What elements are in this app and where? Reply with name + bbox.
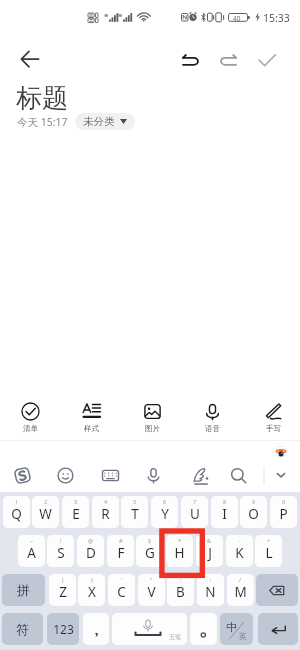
staticText: 语音	[205, 424, 220, 433]
button[interactable]: ;	[197, 574, 224, 606]
button[interactable]: 7	[181, 496, 208, 528]
button[interactable]: "	[138, 574, 165, 606]
staticText: Y	[161, 505, 169, 523]
staticText: /	[239, 576, 242, 584]
staticText: -	[239, 537, 241, 545]
staticText: $	[148, 537, 152, 545]
button[interactable]: 语音	[187, 389, 237, 433]
staticText: 拼	[17, 582, 30, 598]
staticText: 4	[104, 498, 108, 506]
button[interactable]: Redo	[212, 45, 244, 77]
staticText: 图片	[145, 424, 160, 433]
staticText: P	[279, 505, 288, 523]
button[interactable]: Input method	[4, 457, 40, 493]
staticText: R	[101, 505, 110, 523]
button[interactable]: $	[136, 535, 163, 567]
staticText: 手写	[266, 424, 281, 433]
button[interactable]: /	[227, 574, 254, 606]
button[interactable]: 0	[270, 496, 297, 528]
staticText: 15:33	[263, 11, 290, 25]
staticText: 6	[163, 498, 167, 506]
staticText: Z	[59, 583, 67, 601]
staticText: +	[267, 537, 271, 545]
button[interactable]: 拼	[2, 574, 45, 606]
staticText: Q	[11, 505, 22, 523]
button[interactable]: Keyboard layout	[92, 457, 128, 493]
button[interactable]: 123	[47, 613, 79, 645]
button[interactable]: 9	[240, 496, 267, 528]
staticText: 8	[223, 498, 227, 506]
button[interactable]	[258, 613, 298, 645]
button[interactable]: -	[226, 535, 253, 567]
button[interactable]: #	[107, 535, 134, 567]
button[interactable]: 4	[92, 496, 119, 528]
button[interactable]: :	[167, 574, 194, 606]
button[interactable]: 未分类	[75, 113, 135, 130]
staticText: ~	[30, 537, 34, 545]
staticText: V	[147, 583, 156, 601]
staticText: )	[91, 576, 93, 584]
button[interactable]: &	[196, 535, 223, 567]
button[interactable]: +	[255, 535, 282, 567]
staticText: 9	[252, 498, 256, 506]
staticText: 7	[193, 498, 197, 506]
button[interactable]: Back	[12, 46, 48, 82]
button[interactable]: 3	[62, 496, 89, 528]
button[interactable]: 1	[3, 496, 30, 528]
staticText: E	[72, 505, 80, 523]
staticText: @	[88, 537, 94, 545]
staticText: 今天 15:17	[17, 115, 68, 129]
button[interactable]	[190, 613, 217, 645]
button[interactable]: Search	[220, 457, 256, 493]
staticText: 未分类	[83, 115, 115, 128]
staticText: 40	[233, 14, 241, 23]
button[interactable]: Undo	[175, 45, 207, 77]
button[interactable]: 6	[151, 496, 178, 528]
staticText: 0	[282, 498, 286, 506]
staticText: J	[208, 544, 212, 562]
button[interactable]: 中	[220, 613, 253, 645]
button[interactable]: 图片	[127, 389, 177, 433]
button[interactable]: 符	[2, 613, 43, 645]
staticText: F	[117, 544, 125, 562]
button[interactable]: Handwriting	[184, 457, 220, 493]
button[interactable]: *	[166, 535, 193, 567]
button[interactable]	[256, 574, 298, 606]
staticText: T	[131, 505, 139, 523]
button[interactable]: Done	[251, 44, 283, 76]
button[interactable]: 清单	[5, 389, 55, 433]
button[interactable]: 5	[121, 496, 148, 528]
button[interactable]: 2	[32, 496, 59, 528]
button[interactable]: 手写	[248, 389, 298, 433]
staticText: S	[57, 544, 65, 562]
button[interactable]: 样式	[66, 389, 116, 433]
staticText: 2	[44, 498, 48, 506]
staticText: B	[176, 583, 185, 601]
button[interactable]: Hide keyboard	[263, 457, 299, 493]
button[interactable]: Voice input	[135, 457, 171, 493]
button[interactable]: 五笔	[112, 613, 187, 645]
staticText: '	[121, 576, 123, 584]
staticText: O	[248, 505, 259, 523]
button[interactable]: @	[77, 535, 104, 567]
staticText: C	[117, 583, 126, 601]
button[interactable]: Emoji	[47, 457, 83, 493]
button[interactable]: (	[49, 574, 76, 606]
staticText: D	[86, 544, 96, 562]
button[interactable]	[83, 613, 109, 645]
button[interactable]: ~	[18, 535, 45, 567]
button[interactable]: )	[78, 574, 105, 606]
staticText: G	[145, 544, 155, 562]
staticText: ;	[210, 576, 212, 584]
staticText: A	[27, 544, 36, 562]
staticText: &	[207, 537, 212, 545]
button[interactable]: '	[108, 574, 135, 606]
button[interactable]: !	[47, 535, 74, 567]
staticText: *	[178, 537, 182, 545]
button[interactable]: 8	[211, 496, 238, 528]
staticText: !	[60, 537, 62, 545]
staticText: 样式	[84, 424, 99, 433]
staticText: 中	[226, 620, 237, 634]
staticText: M	[234, 583, 247, 601]
staticText: H	[174, 544, 185, 562]
